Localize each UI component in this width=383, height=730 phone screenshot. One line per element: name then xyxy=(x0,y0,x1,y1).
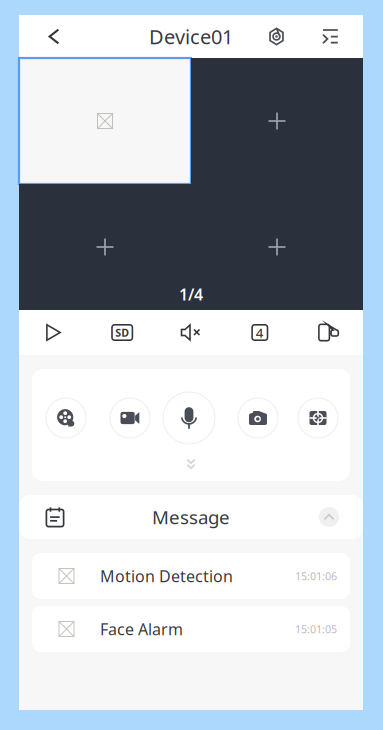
staticText: 15:01:06 xyxy=(295,569,337,583)
button[interactable]: Talk xyxy=(163,392,215,444)
staticText: 4 xyxy=(256,324,264,341)
button[interactable]: Split four xyxy=(225,310,294,355)
staticText: SD xyxy=(115,325,129,340)
staticText: Motion Detection xyxy=(100,565,233,587)
button[interactable]: Motion Detection xyxy=(32,553,350,599)
button[interactable]: Record xyxy=(110,398,150,438)
button[interactable]: Stream quality SD xyxy=(88,310,157,355)
button[interactable]: Snapshot xyxy=(238,398,278,438)
button[interactable]: Back xyxy=(19,15,89,58)
image xyxy=(58,621,74,637)
staticText: 15:01:05 xyxy=(295,622,337,636)
image xyxy=(97,113,113,129)
button[interactable]: More controls xyxy=(169,458,213,470)
staticText: Message xyxy=(152,505,230,529)
button[interactable]: Collapse xyxy=(319,495,339,539)
button[interactable]: Add camera xyxy=(19,184,191,310)
button[interactable]: Playback xyxy=(46,398,86,438)
staticText: Device01 xyxy=(149,23,233,50)
button[interactable]: Settings xyxy=(251,15,302,58)
button[interactable]: Full screen xyxy=(294,310,363,355)
image xyxy=(58,568,74,584)
button[interactable]: Add camera xyxy=(191,184,363,310)
staticText: Face Alarm xyxy=(100,618,183,640)
staticText: 1/4 xyxy=(179,284,203,305)
button[interactable]: Face Alarm xyxy=(32,606,350,652)
button[interactable]: Message log xyxy=(19,495,91,539)
button[interactable]: Add camera xyxy=(191,58,363,184)
button[interactable]: Device list xyxy=(312,15,348,58)
button[interactable]: Camera 1 live view xyxy=(19,58,191,184)
button[interactable]: Play xyxy=(19,310,88,355)
button[interactable]: Mute xyxy=(157,310,225,355)
button[interactable]: PTZ xyxy=(298,398,338,438)
